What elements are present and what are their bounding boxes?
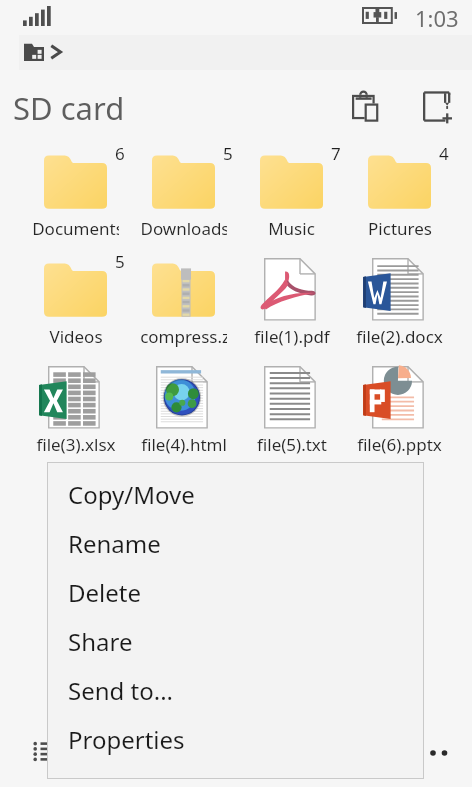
button[interactable]: Pictures	[345, 142, 453, 250]
button[interactable]: file(1).pdf	[237, 250, 345, 358]
staticText: Delete	[68, 576, 141, 609]
button[interactable]: Share	[47, 617, 424, 666]
staticText: 6	[115, 142, 125, 165]
button[interactable]: SD card path	[24, 34, 62, 69]
staticText: 5	[223, 142, 233, 165]
button[interactable]: file(2).docx	[345, 250, 453, 358]
button[interactable]: compress.zip	[129, 250, 237, 358]
staticText: 7	[331, 142, 341, 165]
staticText: file(4).html	[141, 433, 227, 456]
staticText: Send to...	[68, 674, 174, 707]
staticText: file(3).xlsx	[36, 433, 116, 456]
button[interactable]: New file	[411, 81, 463, 133]
staticText: Downloads	[140, 217, 227, 240]
staticText: Pictures	[368, 217, 432, 240]
button[interactable]: file(4).html	[129, 358, 237, 466]
button[interactable]: Send to...	[47, 666, 424, 715]
button[interactable]: file(5).txt	[237, 358, 345, 466]
button[interactable]: file(6).pptx	[345, 358, 453, 466]
button[interactable]: Properties	[47, 715, 424, 764]
button[interactable]: Music	[237, 142, 345, 250]
staticText: compress.zip	[140, 325, 227, 348]
button[interactable]: List view	[23, 729, 67, 773]
staticText: file(5).txt	[257, 433, 327, 456]
button[interactable]: Rename	[47, 519, 424, 568]
staticText: 5	[115, 250, 125, 273]
staticText: 4	[439, 142, 449, 165]
staticText: file(2).docx	[356, 325, 443, 348]
staticText: Properties	[68, 723, 185, 756]
staticText: Share	[68, 625, 133, 658]
staticText: SD card	[13, 87, 125, 129]
button[interactable]: Documents	[21, 142, 129, 250]
button[interactable]: Paste	[340, 81, 392, 133]
button[interactable]: file(3).xlsx	[21, 358, 129, 466]
staticText: Documents	[32, 217, 119, 240]
button[interactable]: Delete	[47, 568, 424, 617]
staticText: 1:03	[415, 3, 459, 33]
staticText: Copy/Move	[68, 478, 195, 511]
button[interactable]: Downloads	[129, 142, 237, 250]
button[interactable]: Videos	[21, 250, 129, 358]
staticText: Music	[268, 217, 315, 240]
staticText: file(1).pdf	[254, 325, 330, 348]
button[interactable]: Copy/Move	[47, 470, 424, 519]
staticText: Rename	[68, 527, 161, 560]
button[interactable]: More options	[421, 731, 465, 775]
staticText: Videos	[49, 325, 103, 348]
staticText: file(6).pptx	[357, 433, 442, 456]
